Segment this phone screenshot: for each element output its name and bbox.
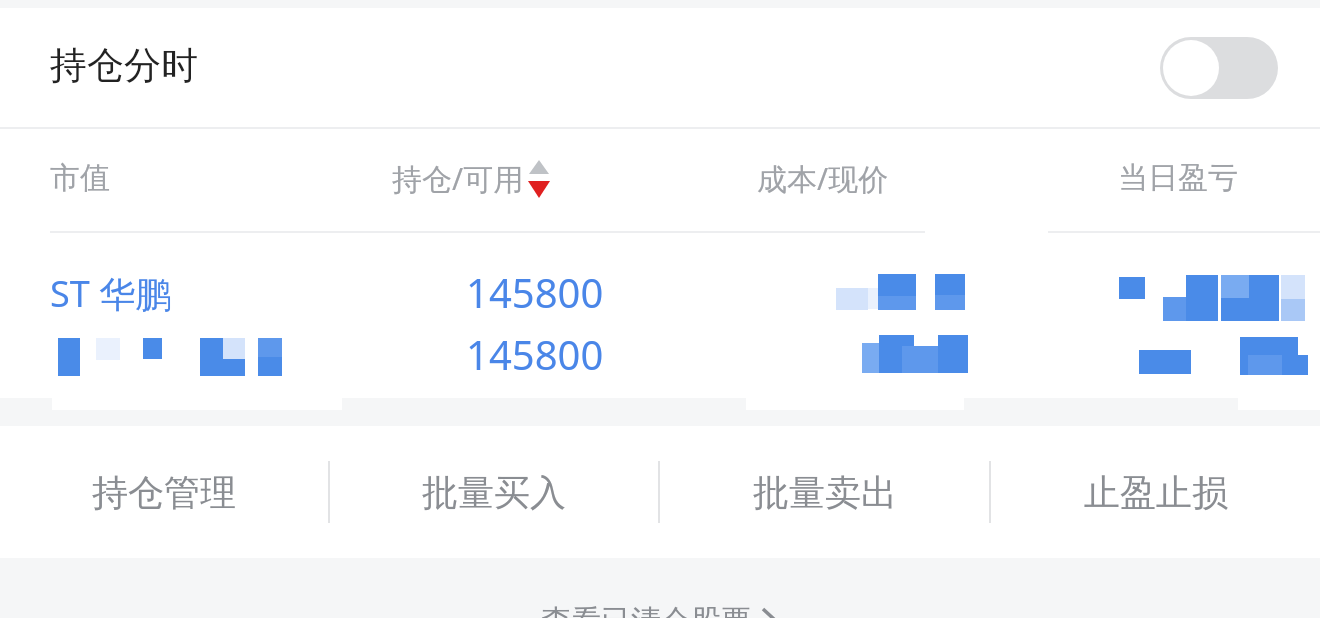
button[interactable]: ST 华鹏 (0, 233, 1320, 398)
staticText: 止盈止损 (1084, 470, 1228, 515)
staticText: 持仓/可用 (392, 158, 524, 199)
button[interactable]: 持仓/可用 (392, 158, 550, 199)
staticText: 持仓管理 (92, 470, 236, 515)
button[interactable]: 成本/现价 (757, 158, 889, 199)
button[interactable]: 止盈止损 (991, 426, 1320, 558)
button[interactable]: 持仓管理 (0, 426, 328, 558)
staticText: 批量买入 (422, 470, 566, 515)
button[interactable]: 批量买入 (330, 426, 658, 558)
staticText: 批量卖出 (753, 470, 897, 515)
button[interactable]: 持仓分时开关 (1160, 37, 1278, 99)
button[interactable]: 市值 (50, 159, 110, 197)
staticText: 145800 (466, 327, 604, 381)
staticText: ST 华鹏 (50, 269, 172, 318)
button[interactable]: 查看已清仓股票 (541, 602, 779, 618)
staticText: 查看已清仓股票 (541, 602, 751, 618)
staticText: 持仓分时 (50, 42, 198, 89)
button[interactable]: 批量卖出 (660, 426, 989, 558)
button[interactable]: 当日盈亏 (1118, 159, 1238, 197)
staticText: 145800 (466, 265, 604, 319)
